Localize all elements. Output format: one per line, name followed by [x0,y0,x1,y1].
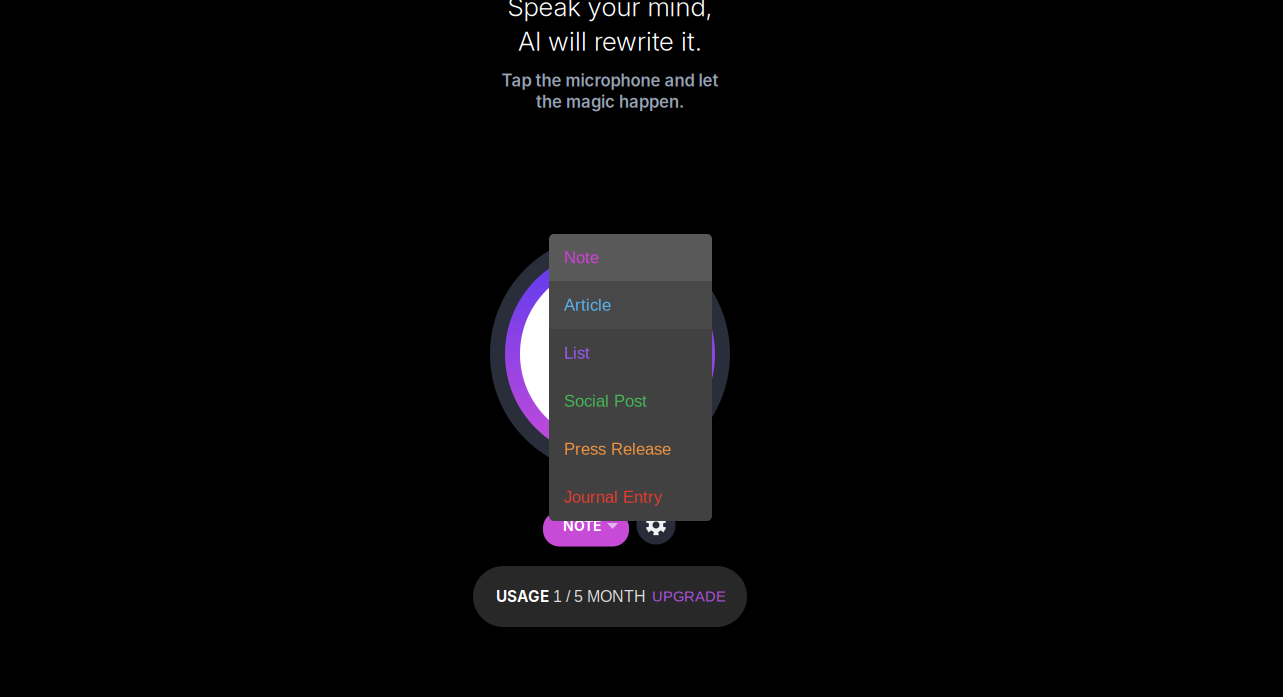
staticText: Speak your mind, [507,0,712,22]
button[interactable]: Social Post [549,377,712,425]
button[interactable]: Settings [636,505,675,544]
button[interactable]: NOTE [543,513,629,546]
staticText: Journal Entry [564,488,662,506]
button[interactable]: Press Release [549,425,712,473]
staticText: USAGE [496,587,549,606]
staticText: NOTE [563,517,602,534]
staticText: Social Post [564,392,647,410]
button[interactable]: List [549,329,712,377]
staticText: UPGRADE [652,588,726,605]
staticText: 1 / 5 MONTH [549,588,646,605]
staticText: AI will rewrite it. [518,25,702,57]
button[interactable]: Note [549,234,712,281]
button[interactable]: Article [549,281,712,329]
staticText: List [564,344,590,362]
staticText: the magic happen. [536,91,684,112]
staticText: Note [564,248,599,267]
button[interactable]: Record [490,234,730,474]
staticText: Tap the microphone and let [501,70,718,90]
staticText: Press Release [564,440,671,458]
button[interactable]: USAGE [473,566,747,627]
button[interactable]: Journal Entry [549,473,712,521]
staticText: Article [564,296,611,314]
